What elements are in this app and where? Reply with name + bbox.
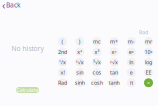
staticText: m- <box>128 38 135 45</box>
button[interactable]: xʸ <box>108 47 121 56</box>
button[interactable]: m- <box>125 37 138 46</box>
button[interactable]: Rad <box>56 78 69 87</box>
staticText: ‹ <box>2 0 5 12</box>
staticText: tanh <box>109 79 120 86</box>
staticText: ʸ√x <box>110 59 118 66</box>
staticText: x³ <box>94 48 99 55</box>
staticText: ( <box>61 38 63 45</box>
button[interactable]: 2nd <box>56 47 69 56</box>
staticText: ³√x <box>93 59 101 66</box>
staticText: cos <box>92 69 101 76</box>
staticText: ²√x <box>76 59 84 66</box>
button[interactable]: ²√x <box>73 58 86 67</box>
staticText: Back <box>6 1 21 9</box>
button[interactable]: tanh <box>108 78 121 87</box>
staticText: x! <box>60 69 64 76</box>
button[interactable]: x² <box>73 47 86 56</box>
button[interactable]: cos <box>90 68 103 77</box>
staticText: eˣ <box>129 48 134 55</box>
staticText: ln <box>129 59 133 66</box>
button[interactable]: ( <box>56 37 69 46</box>
button[interactable]: cosh <box>90 78 103 87</box>
button[interactable]: sinh <box>73 78 86 87</box>
button[interactable]: = <box>142 78 155 87</box>
button[interactable]: EE <box>142 68 155 77</box>
staticText: Rad <box>58 79 67 86</box>
staticText: sinh <box>75 79 85 86</box>
staticText: = <box>147 79 150 86</box>
staticText: e <box>130 69 133 76</box>
button[interactable]: ¹/x <box>56 58 69 67</box>
button[interactable]: sin <box>73 68 86 77</box>
button[interactable]: x! <box>56 68 69 77</box>
button[interactable]: Calculate <box>16 87 39 93</box>
button[interactable]: e <box>125 68 138 77</box>
staticText: 10ˣ <box>144 48 152 55</box>
button[interactable]: tan <box>108 68 121 77</box>
button[interactable]: x³ <box>90 47 103 56</box>
staticText: π <box>130 79 133 86</box>
button[interactable]: m+ <box>108 37 121 46</box>
button[interactable]: eˣ <box>125 47 138 56</box>
staticText: ¹/x <box>59 59 66 66</box>
button[interactable]: π <box>125 78 138 87</box>
button[interactable]: 10ˣ <box>142 47 155 56</box>
button[interactable]: ³√x <box>90 58 103 67</box>
staticText: x² <box>77 48 82 55</box>
staticText: mc <box>93 38 101 45</box>
staticText: 2nd <box>58 48 67 55</box>
staticText: sin <box>76 69 83 76</box>
staticText: log <box>145 59 152 66</box>
staticText: tan <box>110 69 118 76</box>
staticText: ) <box>79 38 81 45</box>
staticText: EE <box>145 69 151 76</box>
button[interactable]: ln <box>125 58 138 67</box>
staticText: Rad <box>139 29 148 36</box>
button[interactable]: ʸ√x <box>108 58 121 67</box>
button[interactable]: mc <box>90 37 103 46</box>
button[interactable]: ‹ <box>0 0 21 10</box>
staticText: cosh <box>91 79 103 86</box>
staticText: Calculate <box>16 86 38 94</box>
staticText: No history <box>11 44 43 53</box>
staticText: mr <box>145 38 152 45</box>
button[interactable]: ) <box>73 37 86 46</box>
button[interactable]: mr <box>142 37 155 46</box>
button[interactable]: log <box>142 58 155 67</box>
staticText: m+ <box>110 38 118 45</box>
staticText: xʸ <box>112 48 117 55</box>
